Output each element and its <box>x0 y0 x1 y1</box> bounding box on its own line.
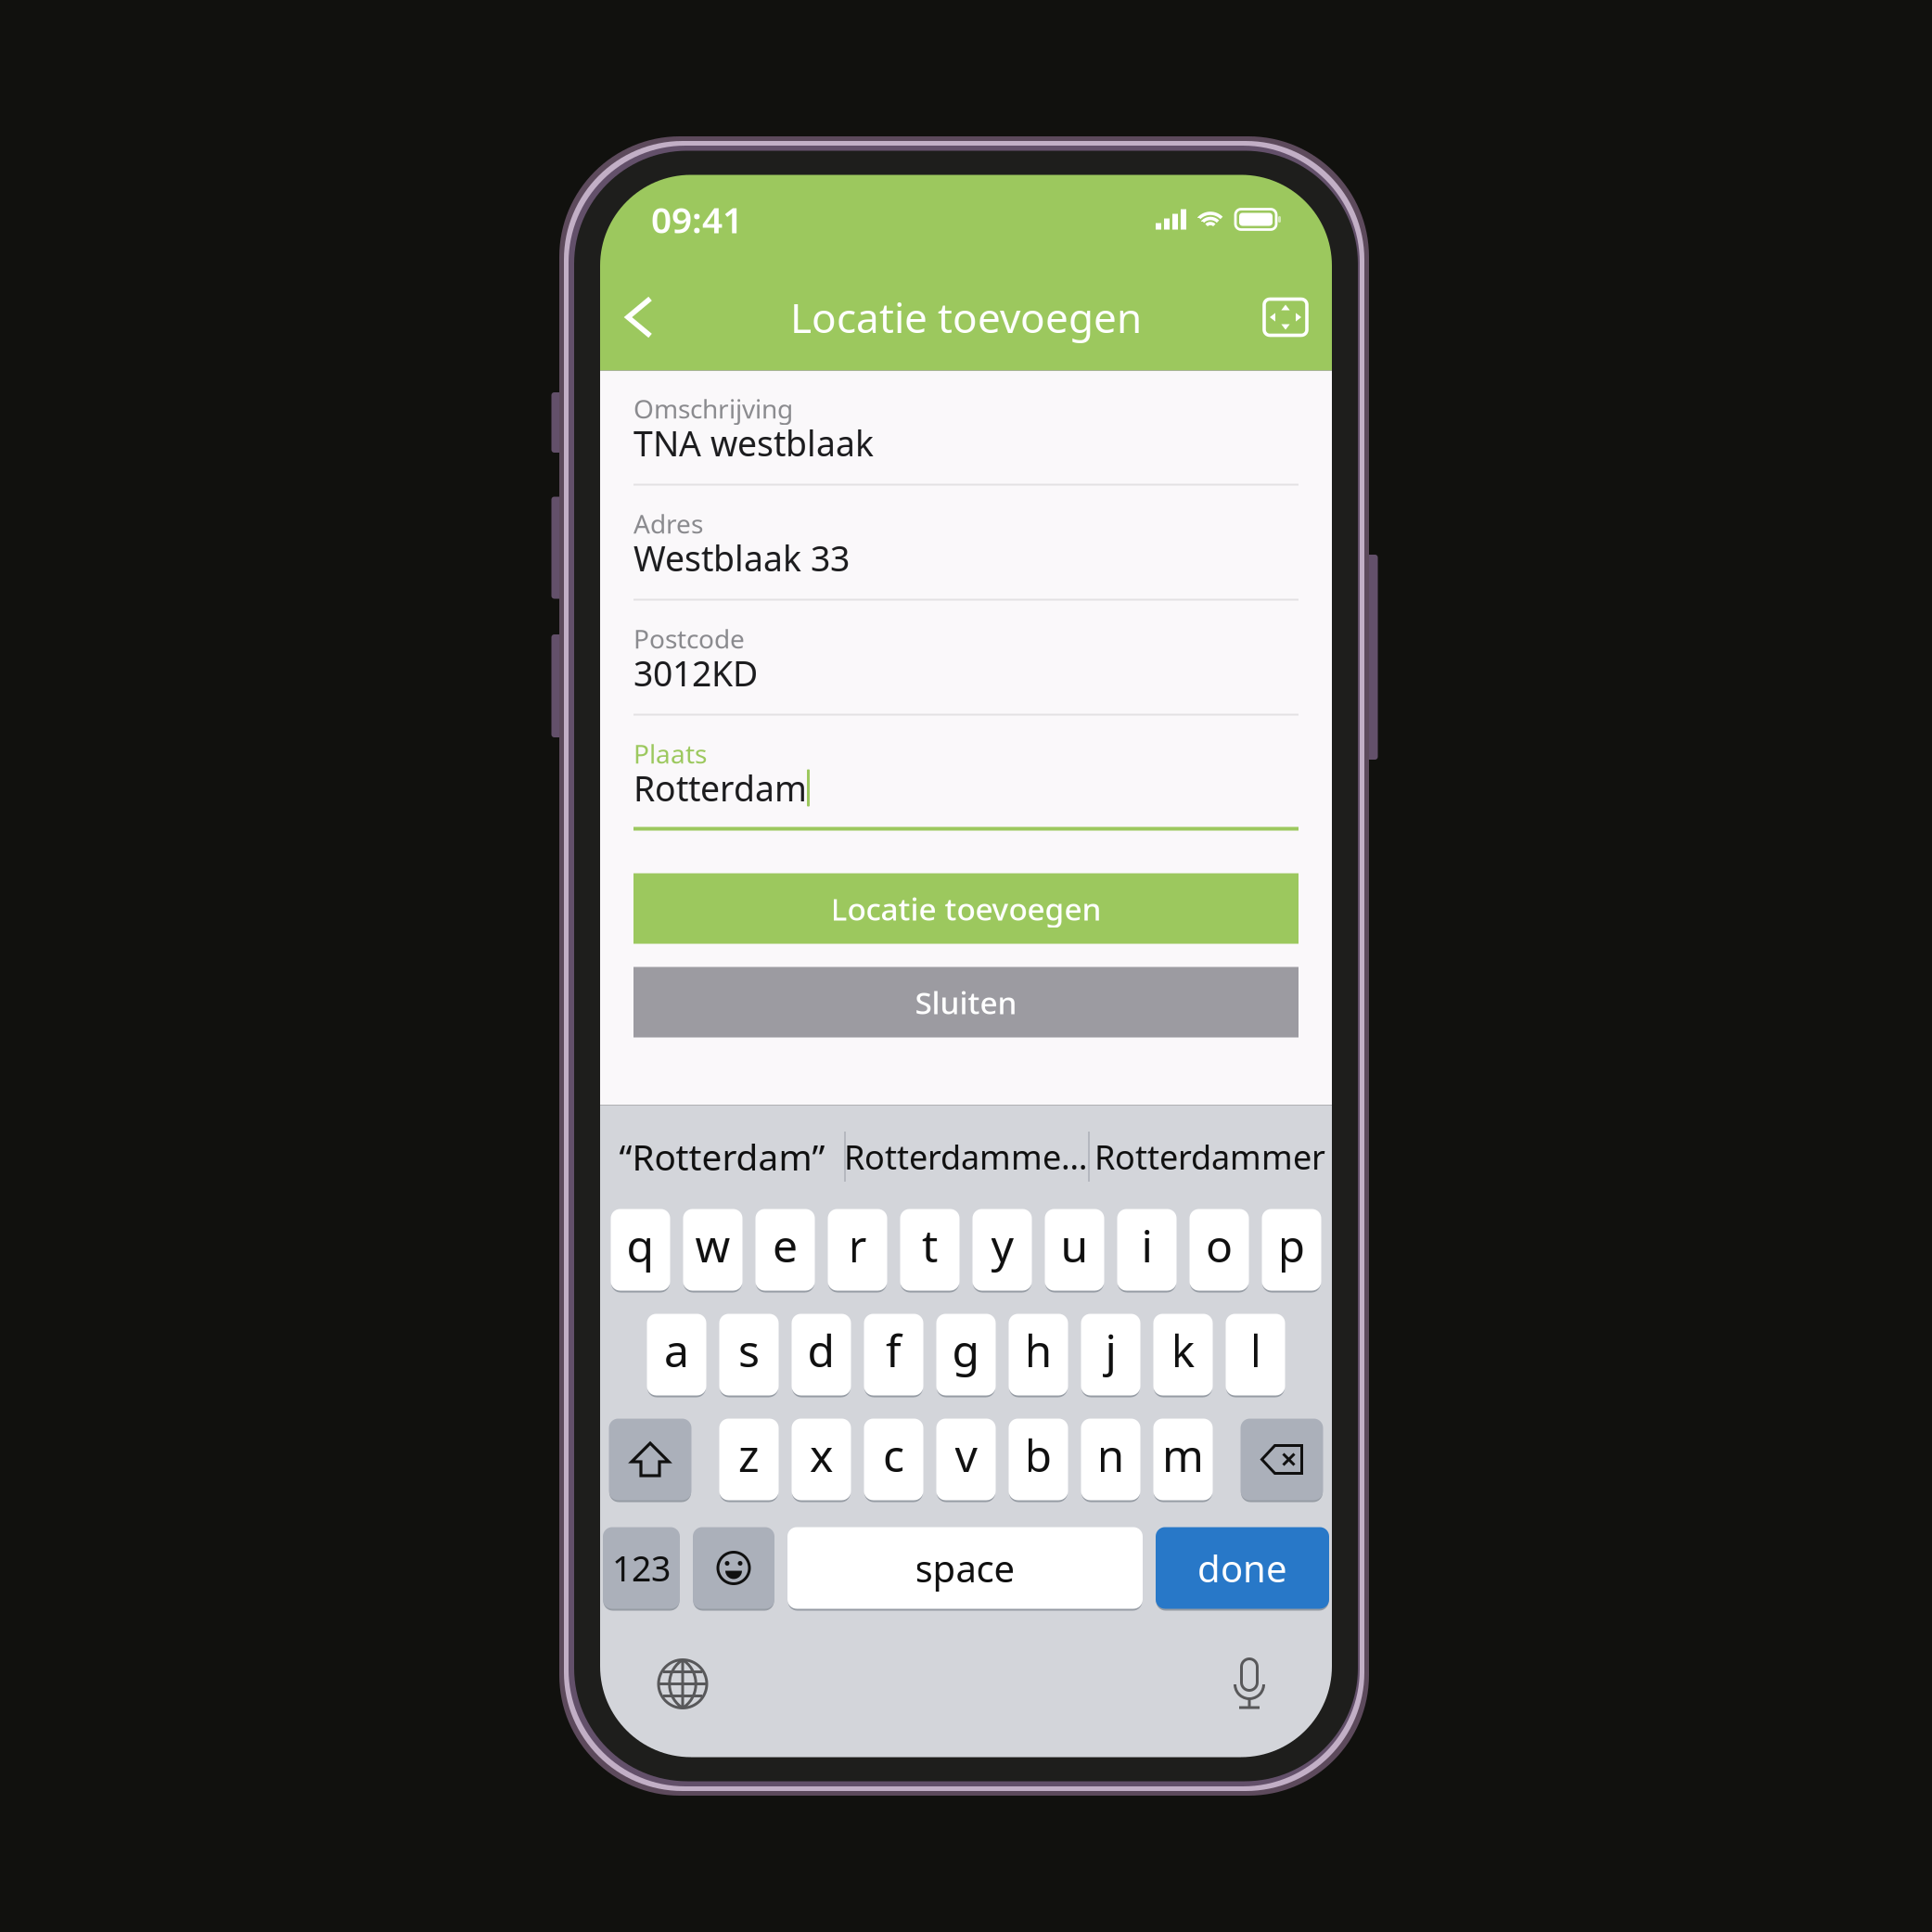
button[interactable]: o <box>1190 1208 1249 1292</box>
button[interactable]: Emoji <box>693 1526 774 1610</box>
staticText: v <box>955 1425 977 1484</box>
button[interactable]: x <box>792 1418 851 1501</box>
staticText: TNA westblaak <box>633 420 874 466</box>
button[interactable]: “Rotterdam” <box>600 1105 844 1208</box>
staticText: d <box>807 1320 835 1379</box>
button[interactable]: k <box>1153 1313 1213 1396</box>
staticText: x <box>810 1425 833 1484</box>
button[interactable]: 123 <box>603 1526 680 1610</box>
button[interactable]: q <box>611 1208 670 1292</box>
staticText: e <box>773 1216 798 1275</box>
button[interactable]: Scan location <box>1232 275 1308 359</box>
staticText: b <box>1024 1425 1052 1484</box>
button[interactable]: f <box>864 1313 923 1396</box>
button[interactable]: s <box>719 1313 779 1396</box>
button[interactable]: Plaats <box>633 716 1299 831</box>
button[interactable]: Delete <box>1241 1418 1323 1501</box>
button[interactable]: Back <box>624 275 700 359</box>
staticText: c <box>883 1425 904 1484</box>
button[interactable]: u <box>1045 1208 1104 1292</box>
staticText: y <box>991 1216 1013 1275</box>
staticText: p <box>1278 1216 1305 1275</box>
staticText: Rotterdammers <box>844 1134 1088 1179</box>
staticText: Omschrijving <box>633 391 793 426</box>
staticText: Rotterdam <box>633 765 807 811</box>
button[interactable]: c <box>864 1418 923 1501</box>
staticText: Rotterdammer <box>1094 1134 1325 1179</box>
staticText: l <box>1250 1320 1261 1379</box>
staticText: u <box>1061 1216 1088 1275</box>
button[interactable]: b <box>1009 1418 1068 1501</box>
staticText: f <box>886 1320 902 1379</box>
staticText: Locatie toevoegen <box>831 888 1101 929</box>
button[interactable]: h <box>1009 1313 1068 1396</box>
staticText: 123 <box>612 1545 671 1591</box>
button[interactable]: j <box>1081 1313 1140 1396</box>
button[interactable]: done <box>1156 1526 1329 1610</box>
button[interactable]: Rotterdammer <box>1088 1105 1332 1208</box>
button[interactable]: space <box>787 1526 1143 1610</box>
button[interactable]: m <box>1153 1418 1213 1501</box>
button[interactable]: r <box>828 1208 887 1292</box>
button[interactable]: l <box>1226 1313 1285 1396</box>
button[interactable]: Shift <box>609 1418 691 1501</box>
button[interactable]: Rotterdammers <box>844 1105 1088 1208</box>
staticText: q <box>627 1216 654 1275</box>
button[interactable]: Locatie toevoegen <box>633 873 1299 944</box>
staticText: o <box>1206 1216 1233 1275</box>
staticText: Postcode <box>633 621 745 656</box>
staticText: w <box>695 1216 730 1275</box>
staticText: j <box>1105 1320 1116 1379</box>
button[interactable]: v <box>936 1418 996 1501</box>
staticText: Westblaak 33 <box>633 535 850 581</box>
staticText: k <box>1171 1320 1195 1379</box>
button[interactable]: z <box>719 1418 779 1501</box>
button[interactable]: Postcode <box>633 601 1299 716</box>
staticText: Sluiten <box>915 982 1017 1023</box>
button[interactable]: e <box>755 1208 815 1292</box>
staticText: m <box>1162 1425 1204 1484</box>
staticText: Locatie toevoegen <box>790 290 1142 344</box>
staticText: i <box>1141 1216 1152 1275</box>
staticText: g <box>952 1320 980 1379</box>
button[interactable]: a <box>647 1313 706 1396</box>
staticText: r <box>848 1216 867 1275</box>
staticText: a <box>664 1320 689 1379</box>
staticText: Adres <box>633 506 703 541</box>
button[interactable]: y <box>972 1208 1032 1292</box>
staticText: 09:41 <box>651 196 743 243</box>
staticText: Plaats <box>633 736 707 771</box>
staticText: t <box>922 1216 938 1275</box>
button[interactable]: p <box>1262 1208 1321 1292</box>
button[interactable]: t <box>900 1208 960 1292</box>
button[interactable]: w <box>683 1208 742 1292</box>
staticText: h <box>1024 1320 1052 1379</box>
button[interactable]: Dictation <box>1212 1645 1286 1723</box>
button[interactable]: Omschrijving <box>633 371 1299 486</box>
button[interactable]: i <box>1117 1208 1177 1292</box>
button[interactable]: n <box>1081 1418 1140 1501</box>
button[interactable]: Next keyboard <box>646 1645 720 1723</box>
staticText: z <box>738 1425 760 1484</box>
staticText: space <box>915 1543 1015 1593</box>
button[interactable]: d <box>792 1313 851 1396</box>
button[interactable]: Adres <box>633 486 1299 601</box>
staticText: done <box>1197 1543 1287 1593</box>
staticText: “Rotterdam” <box>619 1133 825 1180</box>
staticText: n <box>1097 1425 1125 1484</box>
button[interactable]: Sluiten <box>633 967 1299 1037</box>
staticText: s <box>738 1320 760 1379</box>
staticText: 3012KD <box>633 650 758 696</box>
button[interactable]: g <box>936 1313 996 1396</box>
